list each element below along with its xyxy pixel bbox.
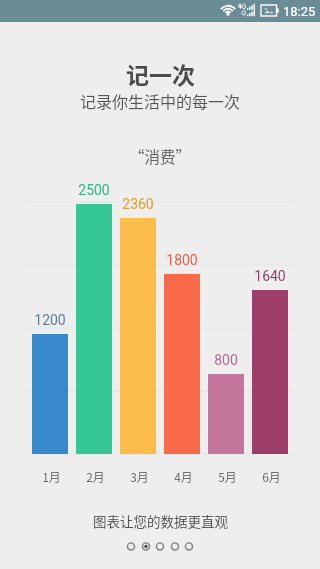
staticText: “消费”: [129, 145, 192, 167]
staticText: 1640: [254, 268, 286, 284]
staticText: 记一次: [126, 57, 195, 90]
staticText: 3月: [130, 468, 149, 485]
staticText: 2500: [78, 182, 110, 198]
staticText: 800: [214, 352, 238, 368]
staticText: 4月: [174, 468, 193, 485]
button[interactable]: Page 3: [153, 540, 167, 554]
button[interactable]: Page 4: [168, 540, 182, 554]
staticText: 图表让您的数据更直观: [93, 511, 228, 531]
staticText: 记录你生活中的每一次: [80, 89, 241, 112]
staticText: 1800: [166, 252, 198, 268]
staticText: 2360: [122, 196, 154, 212]
button[interactable]: Page 1: [124, 540, 138, 554]
staticText: 6月: [262, 468, 281, 485]
button[interactable]: Page 2: [139, 540, 153, 554]
staticText: 1200: [34, 312, 66, 328]
staticText: 5月: [218, 468, 237, 485]
button[interactable]: Page 5: [182, 540, 196, 554]
staticText: 1月: [42, 468, 61, 485]
staticText: 2月: [86, 468, 105, 485]
staticText: 18:25: [283, 4, 316, 19]
